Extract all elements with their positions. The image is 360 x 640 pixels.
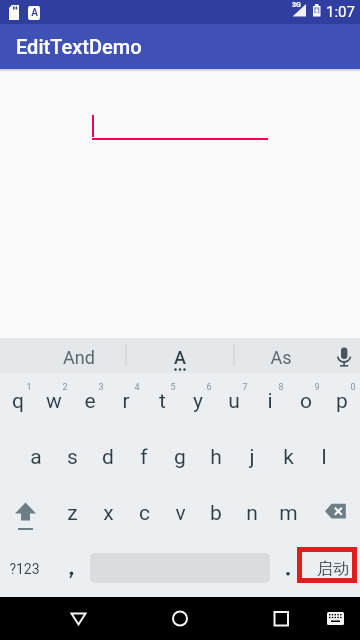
staticText: k (283, 445, 294, 470)
staticText: 启动 (317, 559, 349, 579)
button[interactable]: o (288, 375, 324, 427)
staticText: t (159, 389, 166, 414)
staticText: f (140, 445, 148, 470)
staticText: u (228, 389, 240, 414)
button[interactable]: a (18, 430, 54, 484)
staticText: 3 (98, 382, 104, 393)
staticText: EditTextDemo (16, 35, 142, 58)
staticText: 4 (134, 382, 140, 393)
staticText: 2 (62, 382, 68, 393)
button[interactable]: 启动 (305, 552, 360, 586)
staticText: o (300, 389, 312, 414)
staticText: s (67, 445, 78, 470)
staticText: e (84, 389, 96, 414)
button[interactable] (270, 543, 300, 595)
staticText: i (267, 389, 273, 414)
button[interactable]: ?123 (0, 543, 48, 595)
button[interactable]: b (198, 486, 234, 540)
staticText: d (102, 445, 114, 470)
staticText: q (12, 389, 24, 414)
staticText: c (139, 501, 150, 526)
button[interactable]: s (54, 430, 90, 484)
button[interactable]: l (306, 430, 342, 484)
button[interactable]: e (72, 375, 108, 427)
button[interactable] (306, 489, 360, 541)
staticText: 3G (292, 1, 301, 9)
button[interactable] (251, 597, 311, 640)
staticText: b (210, 501, 222, 526)
staticText: l (321, 445, 327, 470)
button[interactable] (320, 597, 352, 640)
staticText: 6 (206, 382, 212, 393)
button[interactable]: z (54, 486, 90, 540)
button[interactable] (84, 100, 276, 145)
button[interactable]: And (29, 340, 129, 374)
staticText: y (193, 389, 203, 414)
staticText: 5 (170, 382, 176, 393)
button[interactable]: t (144, 375, 180, 427)
button[interactable] (54, 543, 90, 595)
staticText: A (174, 347, 186, 368)
button[interactable]: k (270, 430, 306, 484)
staticText: 0 (350, 382, 356, 393)
staticText: g (174, 445, 186, 470)
button[interactable] (49, 597, 109, 640)
staticText: a (30, 445, 42, 470)
button[interactable]: x (90, 486, 126, 540)
staticText: ?123 (9, 561, 40, 577)
button[interactable]: f (126, 430, 162, 484)
button[interactable]: y (180, 375, 216, 427)
staticText: p (336, 389, 348, 414)
staticText: n (246, 501, 258, 526)
button[interactable]: m (270, 486, 306, 540)
button[interactable]: A (130, 340, 230, 374)
staticText: 8 (278, 382, 284, 393)
button[interactable]: q (0, 375, 36, 427)
button[interactable]: h (198, 430, 234, 484)
button[interactable]: d (90, 430, 126, 484)
button[interactable]: u (216, 375, 252, 427)
button[interactable]: j (234, 430, 270, 484)
button[interactable]: v (162, 486, 198, 540)
staticText: v (175, 501, 186, 526)
staticText: j (249, 445, 255, 470)
button[interactable]: As (231, 340, 331, 374)
staticText: A (31, 7, 38, 19)
button[interactable]: p (324, 375, 360, 427)
staticText: 1 (26, 382, 32, 393)
button[interactable]: n (234, 486, 270, 540)
staticText: x (103, 501, 114, 526)
staticText: 7 (242, 382, 248, 393)
staticText: And (63, 347, 95, 368)
button[interactable] (0, 489, 54, 541)
staticText: 1:07 (326, 3, 355, 21)
button[interactable]: r (108, 375, 144, 427)
button[interactable]: c (126, 486, 162, 540)
button[interactable]: i (252, 375, 288, 427)
staticText: h (210, 445, 222, 470)
staticText: As (270, 347, 292, 368)
button[interactable]: w (36, 375, 72, 427)
staticText: r (122, 389, 130, 414)
staticText: w (46, 389, 62, 414)
staticText: z (67, 501, 78, 526)
staticText: m (279, 501, 298, 526)
button[interactable] (150, 597, 210, 640)
button[interactable]: g (162, 430, 198, 484)
staticText: 9 (314, 382, 320, 393)
